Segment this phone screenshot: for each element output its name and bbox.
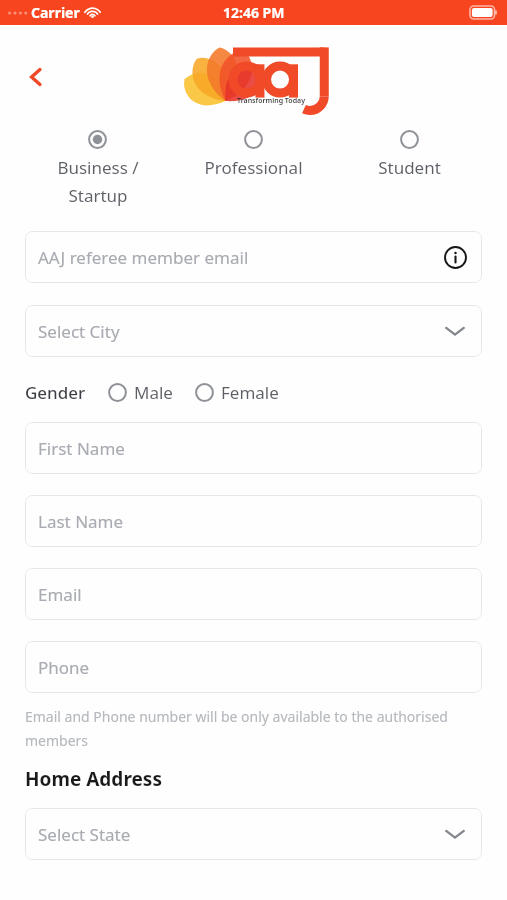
staticText: Phone xyxy=(38,656,90,679)
button[interactable]: Select City xyxy=(25,305,482,357)
staticText: Home Address xyxy=(25,766,162,792)
staticText: AAJ referee member email xyxy=(38,246,249,269)
staticText: Business / Startup xyxy=(57,156,139,207)
button[interactable]: Business / Startup xyxy=(20,128,175,209)
button[interactable]: Female xyxy=(195,377,279,408)
staticText: Last Name xyxy=(38,510,124,533)
button[interactable]: Email xyxy=(25,568,482,620)
staticText: Female xyxy=(221,381,279,404)
button[interactable]: First Name xyxy=(25,422,482,474)
staticText: Select City xyxy=(38,320,120,343)
staticText: 12:46 PM xyxy=(223,3,285,22)
staticText: Email xyxy=(38,583,82,606)
button[interactable]: Select State xyxy=(25,808,482,860)
staticText: Male xyxy=(134,381,173,404)
staticText: Professional xyxy=(204,156,303,179)
button[interactable]: Back xyxy=(14,55,58,99)
button[interactable]: Last Name xyxy=(25,495,482,547)
staticText: Select State xyxy=(38,823,131,846)
button[interactable]: Student xyxy=(331,128,487,181)
other: Information xyxy=(441,243,469,271)
staticText: Email and Phone number will be only avai… xyxy=(25,707,482,750)
button[interactable]: AAJ referee member email xyxy=(25,231,482,283)
staticText: Carrier xyxy=(31,3,80,22)
staticText: Student xyxy=(378,156,441,179)
button[interactable]: Professional xyxy=(175,128,331,181)
button[interactable]: Male xyxy=(108,377,173,408)
staticText: Gender xyxy=(25,381,86,404)
button[interactable]: Phone xyxy=(25,641,482,693)
staticText: First Name xyxy=(38,437,125,460)
staticText: Transforming Today xyxy=(237,96,305,106)
